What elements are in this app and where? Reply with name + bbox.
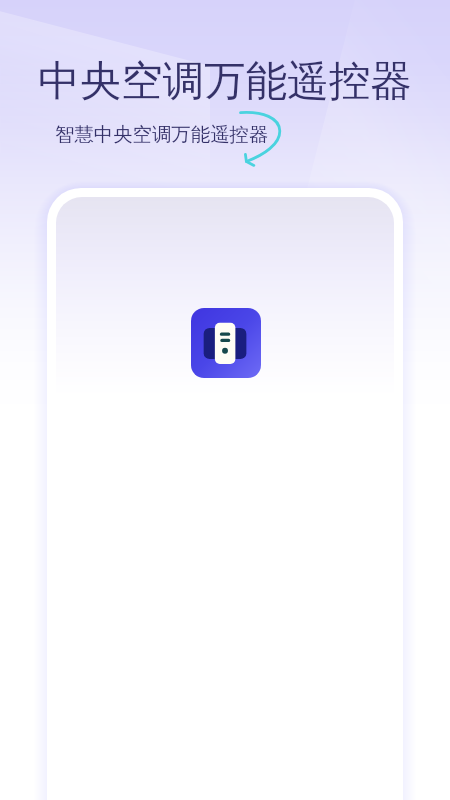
staticText: 中央空调万能遥控器 [0, 55, 450, 107]
button[interactable]: App icon [191, 308, 261, 378]
staticText: 智慧中央空调万能遥控器 [55, 122, 269, 146]
